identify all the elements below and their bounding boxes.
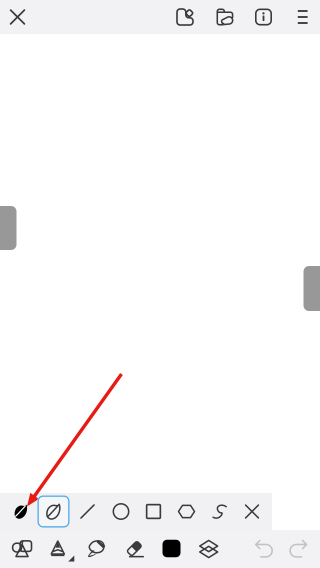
button[interactable]: Close [0,0,37,34]
button[interactable]: Lasso [78,530,115,568]
button[interactable]: Shapes [3,530,40,568]
button[interactable]: Info [245,0,281,34]
button[interactable]: Eraser [116,530,153,568]
button[interactable]: Undo [245,530,282,568]
button[interactable]: Close shape picker [236,493,268,529]
button[interactable]: Colour [153,529,190,567]
button[interactable]: Leaf [37,493,69,529]
button[interactable]: Layers [190,530,227,568]
button[interactable]: Brush [5,493,37,529]
button[interactable]: Redo [280,530,317,568]
button[interactable]: Square [137,493,169,529]
button[interactable]: Circle [105,493,137,529]
button[interactable]: Line [71,493,103,529]
button[interactable]: Polygon [170,493,202,529]
button[interactable]: Pencil [41,530,78,568]
button[interactable]: Curve [203,493,235,529]
button[interactable]: Menu [285,0,320,34]
button[interactable]: Export image [167,0,203,34]
button[interactable]: Cloud files [206,0,242,34]
